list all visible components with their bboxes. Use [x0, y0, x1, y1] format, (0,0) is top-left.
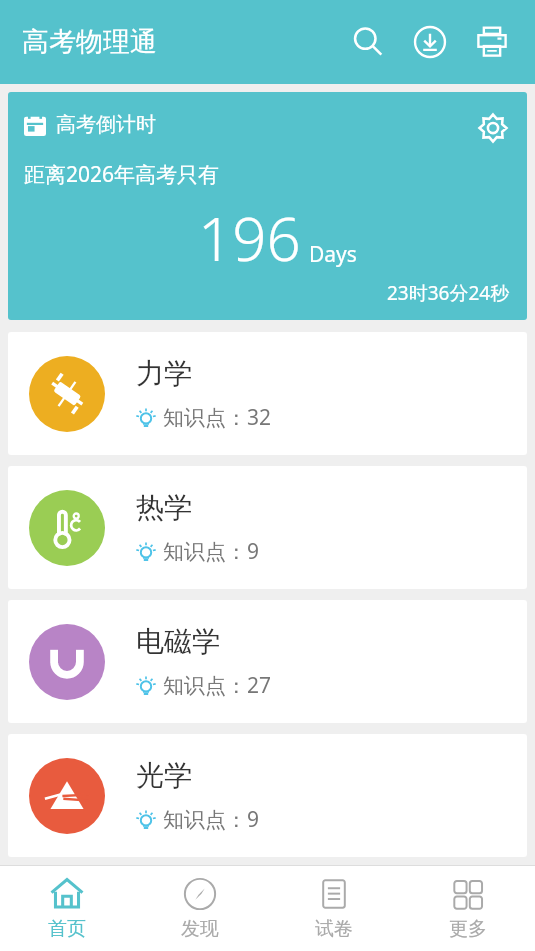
staticText: 196 [198, 197, 301, 279]
staticText: Days [309, 240, 357, 269]
staticText: 首页 [48, 917, 86, 941]
staticText: 知识点：9 [163, 805, 260, 834]
staticText: 试卷 [315, 917, 353, 941]
button[interactable]: 试卷 [267, 866, 401, 951]
button[interactable]: 光学 [8, 734, 527, 857]
staticText: 高考物理通 [22, 25, 157, 59]
staticText: 光学 [136, 758, 192, 793]
button[interactable]: Search [337, 11, 399, 73]
staticText: 知识点：9 [163, 537, 260, 566]
staticText: 高考倒计时 [56, 112, 156, 137]
staticText: 知识点：27 [163, 671, 272, 700]
staticText: 23时36分24秒 [387, 280, 510, 306]
button[interactable]: Settings [469, 104, 517, 152]
button[interactable]: 力学 [8, 332, 527, 455]
staticText: 力学 [136, 356, 192, 391]
staticText: 知识点：32 [163, 403, 272, 432]
button[interactable]: 发现 [133, 866, 267, 951]
staticText: 热学 [136, 490, 192, 525]
button[interactable]: 热学 [8, 466, 527, 589]
button[interactable]: Print [461, 11, 523, 73]
staticText: 电磁学 [136, 624, 220, 659]
staticText: 更多 [449, 917, 487, 941]
staticText: 发现 [181, 917, 219, 941]
button[interactable]: 高考倒计时 [8, 92, 527, 320]
button[interactable]: 首页 [0, 866, 133, 951]
button[interactable]: 电磁学 [8, 600, 527, 723]
staticText: 距离2026年高考只有 [24, 160, 220, 189]
button[interactable]: 更多 [401, 866, 535, 951]
button[interactable]: Download [399, 11, 461, 73]
